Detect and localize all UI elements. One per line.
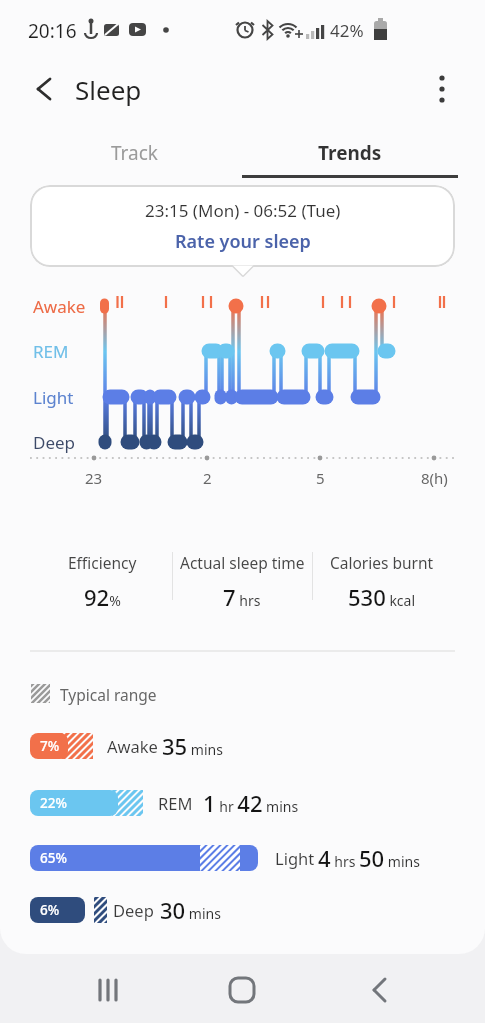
staticText: 7 hrs xyxy=(223,582,261,612)
staticText: 7% xyxy=(40,737,60,755)
staticText: 20:16 xyxy=(28,18,77,44)
staticText: Trends xyxy=(318,140,382,166)
staticText: 530 kcal xyxy=(348,582,416,612)
staticText: 5 xyxy=(316,468,325,488)
staticText: 35 mins xyxy=(162,731,223,761)
staticText: Calories burnt xyxy=(330,552,434,573)
staticText: 8(h) xyxy=(421,468,448,488)
button[interactable]: Track xyxy=(27,130,242,176)
staticText: Light xyxy=(33,386,74,409)
button[interactable] xyxy=(88,970,128,1010)
staticText: 30 mins xyxy=(160,895,221,925)
button[interactable] xyxy=(360,970,400,1010)
staticText: 1 hr 42 mins xyxy=(203,788,299,818)
staticText: Deep xyxy=(113,899,154,921)
button[interactable]: Trends xyxy=(242,130,458,176)
staticText: Efficiency xyxy=(68,552,137,573)
staticText: 6% xyxy=(40,901,60,919)
staticText: 22% xyxy=(40,794,67,812)
staticText: Deep xyxy=(33,431,76,454)
staticText: REM xyxy=(33,340,69,363)
button[interactable] xyxy=(425,72,459,106)
staticText: Sleep xyxy=(75,72,142,107)
button[interactable] xyxy=(26,72,60,106)
staticText: 2 xyxy=(203,468,212,488)
staticText: Awake xyxy=(107,735,158,757)
button[interactable]: 23:15 (Mon) - 06:52 (Tue) xyxy=(30,185,455,267)
staticText: Track xyxy=(111,140,159,166)
staticText: 23 xyxy=(85,468,103,488)
staticText: Rate your sleep xyxy=(175,229,311,254)
staticText: Light xyxy=(275,847,315,869)
staticText: 42% xyxy=(330,19,364,42)
staticText: Typical range xyxy=(60,684,157,705)
staticText: 65% xyxy=(40,849,67,867)
staticText: 23:15 (Mon) - 06:52 (Tue) xyxy=(145,199,341,222)
staticText: REM xyxy=(158,792,193,814)
staticText: Actual sleep time xyxy=(180,552,305,573)
staticText: Awake xyxy=(33,295,86,318)
staticText: 4 hrs 50 mins xyxy=(318,843,420,873)
button[interactable] xyxy=(222,970,262,1010)
staticText: 92% xyxy=(84,582,121,612)
